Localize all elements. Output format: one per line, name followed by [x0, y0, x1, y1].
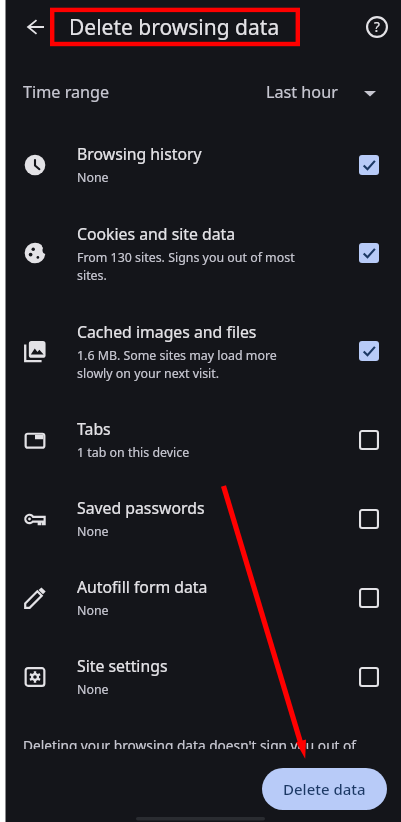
button[interactable]: Autofill form data [0, 558, 401, 637]
staticText: From 130 sites. Signs you out of most si… [77, 249, 297, 284]
button[interactable]: Back [15, 7, 55, 47]
staticText: Site settings [77, 655, 168, 677]
staticText: Deleting your browsing data doesn't sign… [23, 736, 380, 749]
staticText: 1 tab on this device [77, 444, 190, 461]
staticText: Last hour [266, 81, 338, 103]
staticText: Cookies and site data [77, 223, 236, 245]
staticText: Delete browsing data [69, 13, 280, 42]
staticText: None [77, 602, 109, 619]
staticText: Cached images and files [77, 321, 257, 343]
button[interactable]: Help [357, 7, 397, 47]
button[interactable]: Tabs [0, 400, 401, 479]
staticText: Tabs [77, 418, 111, 440]
button[interactable]: Saved passwords [0, 479, 401, 558]
staticText: ? [374, 18, 380, 36]
staticText: Browsing history [77, 143, 202, 165]
staticText: None [77, 523, 109, 540]
staticText: 1.6 MB. Some sites may load more slowly … [77, 347, 297, 382]
staticText: Autofill form data [77, 576, 208, 598]
button[interactable]: Time range [0, 69, 401, 117]
staticText: None [77, 169, 109, 186]
button[interactable]: Browsing history [0, 125, 401, 204]
button[interactable]: Cookies and site data [0, 204, 401, 302]
staticText: Saved passwords [77, 497, 205, 519]
staticText: None [77, 681, 109, 698]
button[interactable]: Cached images and files [0, 302, 401, 400]
button[interactable]: Delete data [262, 768, 387, 810]
staticText: Time range [23, 81, 110, 103]
staticText: Delete data [283, 779, 366, 799]
button[interactable]: Site settings [0, 637, 401, 716]
